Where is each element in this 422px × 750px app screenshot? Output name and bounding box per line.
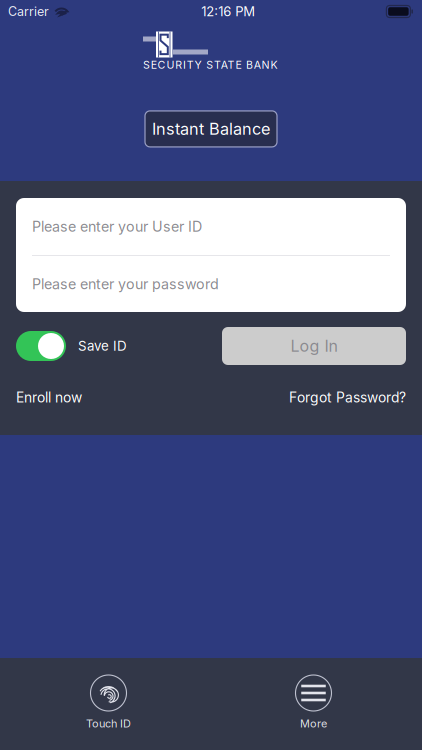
button[interactable]: Touch ID	[6, 675, 211, 730]
staticText: Save ID	[78, 338, 127, 354]
staticText: 12:16 PM	[201, 4, 255, 19]
button[interactable]: More	[211, 675, 416, 730]
button[interactable]: Enroll now	[16, 389, 82, 406]
staticText: Instant Balance	[152, 119, 270, 139]
staticText: Please enter your password	[32, 275, 219, 293]
staticText: Forgot Password?	[289, 389, 406, 406]
staticText: Please enter your User ID	[32, 218, 202, 235]
staticText: SECURITY STATE BANK	[143, 58, 277, 71]
staticText: Carrier	[8, 4, 49, 19]
button[interactable]: Log In	[222, 327, 406, 365]
button[interactable]: Forgot Password?	[289, 389, 406, 406]
button[interactable]: Save ID	[16, 331, 127, 361]
staticText: Enroll now	[16, 389, 82, 406]
button[interactable]: Instant Balance	[145, 111, 277, 147]
staticText: Touch ID	[86, 717, 131, 730]
staticText: Log In	[290, 336, 337, 356]
staticText: More	[300, 717, 327, 730]
